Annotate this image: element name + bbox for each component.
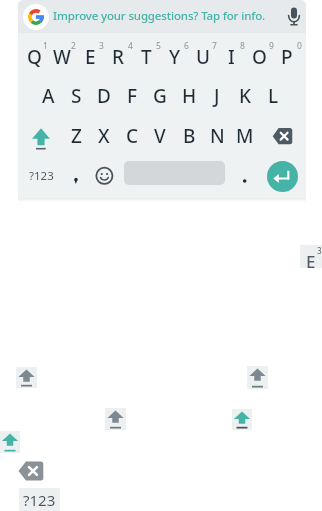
- button[interactable]: D: [90, 82, 118, 110]
- staticText: N: [210, 123, 225, 149]
- button[interactable]: M: [231, 122, 259, 150]
- staticText: 4: [128, 40, 133, 50]
- button[interactable]: [283, 5, 305, 29]
- staticText: S: [71, 83, 82, 109]
- staticText: T: [141, 44, 152, 70]
- staticText: ?123: [29, 168, 54, 184]
- button[interactable]: T: [132, 43, 160, 71]
- button[interactable]: C: [118, 122, 146, 150]
- staticText: M: [236, 123, 254, 149]
- button[interactable]: [300, 245, 322, 268]
- button[interactable]: [232, 409, 252, 430]
- staticText: W: [53, 44, 71, 70]
- button[interactable]: Y: [161, 43, 189, 71]
- button[interactable]: [66, 168, 86, 188]
- staticText: E: [85, 44, 96, 70]
- staticText: J: [214, 83, 220, 109]
- staticText: 6: [184, 40, 189, 50]
- button[interactable]: Z: [62, 122, 90, 150]
- staticText: ?123: [23, 490, 56, 510]
- staticText: 9: [269, 40, 274, 50]
- button[interactable]: [268, 124, 297, 148]
- staticText: C: [126, 123, 139, 149]
- button[interactable]: R: [104, 43, 132, 71]
- button[interactable]: ?123: [19, 488, 60, 511]
- button[interactable]: W: [48, 43, 76, 71]
- button[interactable]: [17, 460, 45, 482]
- staticText: H: [182, 83, 197, 109]
- staticText: X: [98, 123, 110, 149]
- button[interactable]: V: [146, 122, 174, 150]
- button[interactable]: [18, 0, 306, 33]
- button[interactable]: [94, 165, 115, 186]
- staticText: P: [281, 44, 293, 70]
- staticText: D: [97, 83, 111, 109]
- staticText: 5: [156, 40, 161, 50]
- staticText: L: [268, 83, 279, 109]
- staticText: B: [183, 123, 196, 149]
- button[interactable]: [267, 161, 298, 192]
- button[interactable]: [27, 122, 55, 151]
- button[interactable]: I: [217, 43, 245, 71]
- staticText: O: [252, 44, 267, 70]
- button[interactable]: [105, 408, 126, 430]
- staticText: 7: [212, 40, 217, 50]
- button[interactable]: K: [231, 82, 259, 110]
- button[interactable]: Q: [20, 43, 48, 71]
- staticText: Improve your suggestions? Tap for info.: [53, 8, 266, 24]
- button[interactable]: [0, 431, 20, 453]
- button[interactable]: H: [175, 82, 203, 110]
- staticText: 1: [43, 40, 48, 50]
- button[interactable]: [235, 168, 255, 188]
- button[interactable]: N: [203, 122, 231, 150]
- button[interactable]: A: [34, 82, 62, 110]
- staticText: E: [306, 250, 316, 270]
- button[interactable]: J: [203, 82, 231, 110]
- staticText: 3: [99, 40, 104, 50]
- staticText: G: [153, 83, 167, 109]
- staticText: F: [127, 83, 138, 109]
- staticText: V: [154, 123, 166, 149]
- staticText: R: [112, 44, 125, 70]
- staticText: 0: [297, 40, 302, 50]
- staticText: U: [196, 44, 211, 70]
- button[interactable]: P: [273, 43, 301, 71]
- button[interactable]: U: [189, 43, 217, 71]
- button[interactable]: S: [62, 82, 90, 110]
- button[interactable]: O: [245, 43, 273, 71]
- button[interactable]: [16, 367, 37, 388]
- button[interactable]: B: [175, 122, 203, 150]
- button[interactable]: F: [118, 82, 146, 110]
- button[interactable]: X: [90, 122, 118, 150]
- button[interactable]: Improve your suggestions? Tap for info.: [53, 2, 271, 30]
- staticText: 2: [71, 40, 76, 50]
- staticText: A: [42, 83, 55, 109]
- button[interactable]: E: [76, 43, 104, 71]
- staticText: Z: [71, 123, 82, 149]
- button[interactable]: ?123: [24, 166, 58, 186]
- staticText: 8: [240, 40, 245, 50]
- staticText: Q: [27, 44, 42, 70]
- button[interactable]: G: [146, 82, 174, 110]
- staticText: 3: [317, 245, 322, 255]
- button[interactable]: L: [259, 82, 287, 110]
- button[interactable]: [23, 4, 49, 30]
- staticText: Y: [169, 44, 181, 70]
- staticText: I: [228, 44, 235, 70]
- button[interactable]: [247, 366, 268, 389]
- staticText: K: [239, 83, 252, 109]
